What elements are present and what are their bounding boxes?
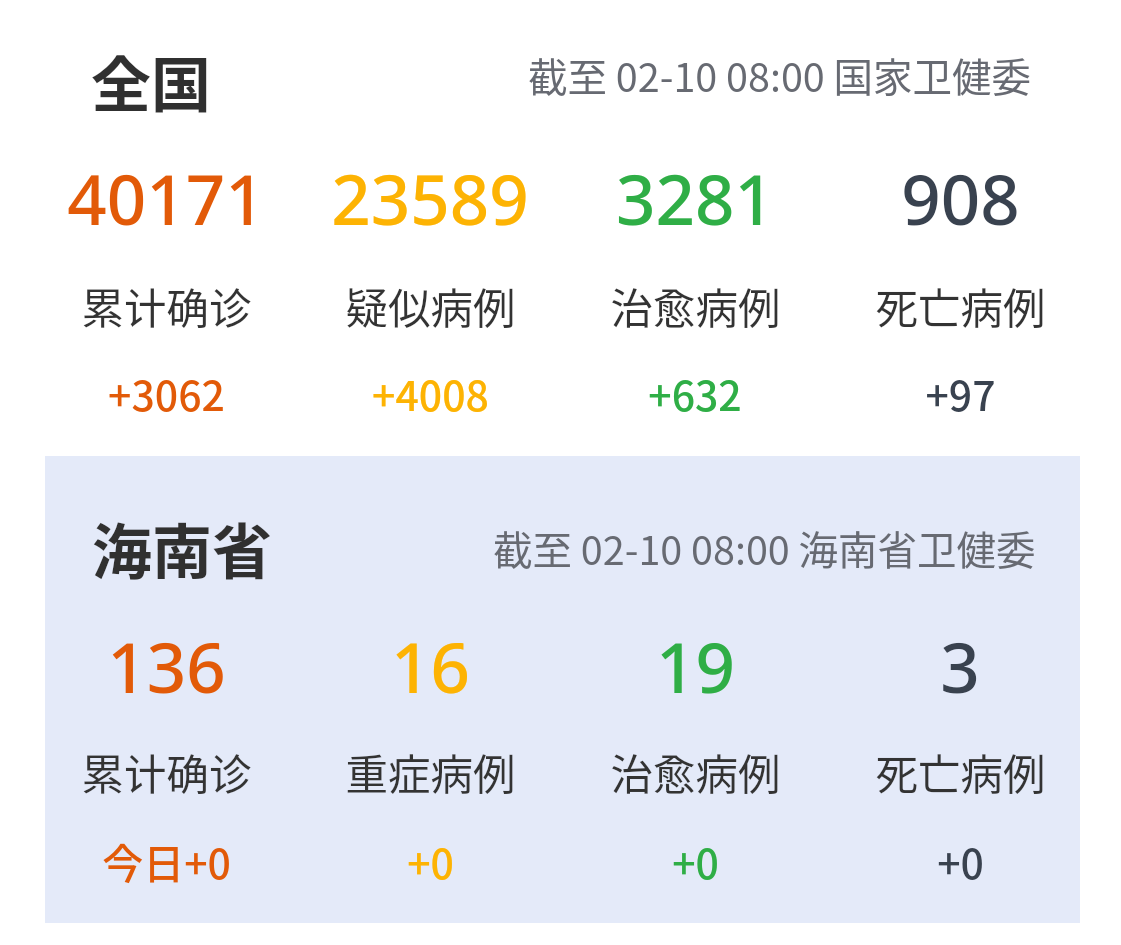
- button[interactable]: 908: [830, 0, 1090, 94]
- staticText: 累计确诊: [81, 741, 252, 803]
- button[interactable]: 136: [36, 456, 296, 550]
- staticText: 3281: [616, 151, 774, 245]
- staticText: 治愈病例: [610, 275, 781, 337]
- staticText: 截至 02-10 08:00 国家卫健委: [528, 46, 1032, 103]
- staticText: 40171: [67, 151, 265, 245]
- staticText: +3062: [108, 363, 225, 422]
- staticText: 今日+0: [102, 831, 231, 890]
- staticText: 累计确诊: [81, 275, 252, 337]
- staticText: 19: [656, 619, 735, 713]
- staticText: +0: [937, 831, 984, 890]
- staticText: 死亡病例: [875, 275, 1046, 337]
- staticText: 重症病例: [345, 741, 516, 803]
- button[interactable]: 19: [565, 456, 825, 550]
- button[interactable]: 23589: [300, 0, 560, 94]
- staticText: 截至 02-10 08:00 海南省卫健委: [493, 519, 1036, 576]
- staticText: 136: [107, 619, 226, 713]
- button[interactable]: 全国: [0, 0, 1121, 456]
- button[interactable]: 3: [830, 456, 1090, 550]
- staticText: 治愈病例: [610, 741, 781, 803]
- button[interactable]: 40171: [36, 0, 296, 94]
- staticText: 全国: [91, 37, 211, 124]
- staticText: +632: [648, 363, 742, 422]
- button[interactable]: 3281: [565, 0, 825, 94]
- staticText: +0: [672, 831, 719, 890]
- staticText: 3: [940, 619, 980, 713]
- staticText: +97: [925, 363, 996, 422]
- staticText: 23589: [331, 151, 529, 245]
- button[interactable]: 海南省: [45, 456, 1080, 923]
- button[interactable]: 16: [300, 456, 560, 550]
- staticText: 疑似病例: [345, 275, 516, 337]
- staticText: 死亡病例: [875, 741, 1046, 803]
- staticText: 海南省: [92, 504, 272, 591]
- staticText: 908: [901, 151, 1020, 245]
- staticText: +4008: [372, 363, 489, 422]
- staticText: +0: [407, 831, 454, 890]
- staticText: 16: [391, 619, 470, 713]
